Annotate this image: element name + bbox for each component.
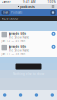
button[interactable]: Back (3, 93, 6, 97)
staticText: 9:41 AM (23, 0, 35, 4)
button[interactable]: Menu (51, 4, 55, 8)
staticText: The Show Name (8, 36, 29, 39)
button[interactable]: Library (50, 10, 55, 15)
staticText: Jan 11 — 38 min (1, 52, 25, 56)
staticText: Episode title (8, 45, 26, 48)
staticText: Back (3, 11, 8, 14)
staticText: podcasts (19, 4, 35, 9)
staticText: Podcasts (11, 11, 22, 14)
staticText: Nothing else to show (13, 72, 44, 76)
button[interactable]: Settings (51, 93, 54, 97)
button[interactable]: Home (19, 93, 22, 97)
staticText: Jan 12 — 45 min (1, 39, 25, 43)
button[interactable]: Back (1, 10, 9, 14)
button[interactable]: Bookmarks (35, 93, 38, 97)
button[interactable]: Download (51, 45, 55, 49)
staticText: Carrier (1, 0, 10, 4)
button[interactable]: Download (51, 32, 55, 36)
staticText: The Show Name (8, 49, 29, 52)
staticText: 100% (47, 0, 55, 4)
staticText: Episode title (8, 32, 26, 35)
staticText: ALL EPISODES (1, 17, 17, 20)
